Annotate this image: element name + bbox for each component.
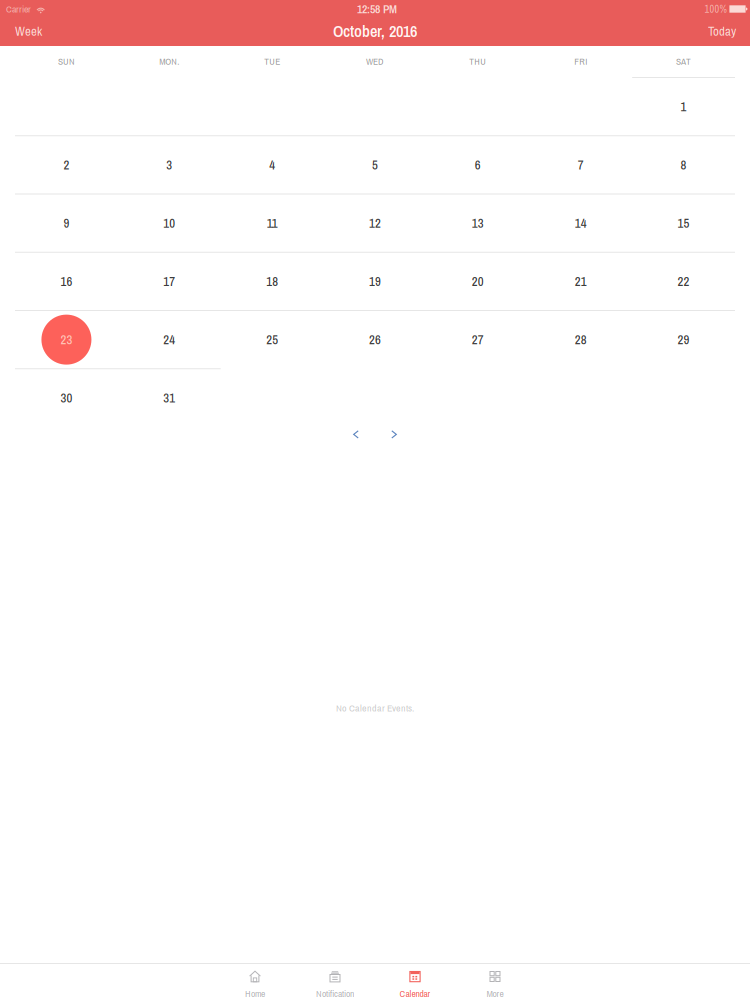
- staticText: 3: [166, 156, 172, 173]
- staticText: 13: [472, 214, 484, 232]
- staticText: 23: [60, 331, 72, 348]
- staticText: 26: [369, 331, 381, 348]
- staticText: Carrier: [6, 2, 31, 16]
- button[interactable]: Week: [15, 20, 42, 42]
- button[interactable]: 5: [324, 136, 426, 193]
- button[interactable]: 24: [118, 311, 221, 368]
- button[interactable]: 22: [632, 253, 735, 310]
- button[interactable]: Previous month: [341, 423, 371, 445]
- staticText: 27: [472, 331, 484, 348]
- staticText: SUN: [58, 55, 75, 68]
- button[interactable]: 11: [221, 194, 324, 252]
- button[interactable]: Calendar: [375, 963, 455, 1000]
- staticText: October, 2016: [333, 20, 417, 42]
- staticText: MON.: [159, 55, 179, 68]
- staticText: 31: [163, 389, 175, 406]
- staticText: 5: [372, 156, 378, 173]
- staticText: 30: [60, 389, 72, 406]
- staticText: Calendar: [399, 987, 430, 1000]
- button[interactable]: 31: [118, 369, 221, 426]
- button[interactable]: 12: [324, 194, 426, 252]
- button[interactable]: 29: [632, 311, 735, 368]
- staticText: 15: [678, 214, 690, 232]
- staticText: 28: [575, 331, 587, 348]
- staticText: 1: [681, 98, 687, 115]
- staticText: 4: [269, 156, 275, 173]
- staticText: 10: [163, 214, 175, 232]
- button[interactable]: Next month: [379, 423, 409, 445]
- button[interactable]: 2: [15, 136, 118, 193]
- button[interactable]: Notification: [295, 963, 375, 1000]
- button[interactable]: 28: [529, 311, 632, 368]
- staticText: 100%: [704, 2, 726, 16]
- staticText: Home: [245, 987, 265, 1000]
- button[interactable]: 15: [632, 194, 735, 252]
- staticText: 6: [475, 156, 481, 173]
- button[interactable]: 18: [221, 253, 324, 310]
- staticText: 19: [369, 273, 381, 290]
- staticText: 24: [163, 331, 175, 348]
- staticText: 29: [678, 331, 690, 348]
- staticText: 20: [472, 273, 484, 290]
- staticText: 18: [266, 273, 278, 290]
- staticText: WED: [366, 55, 384, 68]
- staticText: 12: [369, 214, 381, 232]
- staticText: 12:58 PM: [357, 1, 397, 17]
- button[interactable]: 25: [221, 311, 324, 368]
- staticText: SAT: [676, 55, 691, 68]
- button[interactable]: 27: [426, 311, 529, 368]
- staticText: 17: [163, 273, 175, 290]
- staticText: More: [486, 987, 503, 1000]
- staticText: THU: [469, 55, 486, 68]
- staticText: 22: [678, 273, 690, 290]
- staticText: 8: [681, 156, 687, 173]
- staticText: 2: [63, 156, 69, 173]
- staticText: 9: [63, 214, 69, 232]
- button[interactable]: Today: [708, 20, 736, 42]
- button[interactable]: 26: [324, 311, 426, 368]
- staticText: Notification: [316, 987, 354, 1000]
- staticText: No Calendar Events.: [336, 701, 414, 715]
- staticText: 16: [60, 273, 72, 290]
- button[interactable]: 14: [529, 194, 632, 252]
- staticText: 11: [267, 214, 278, 232]
- staticText: 7: [578, 156, 584, 173]
- button[interactable]: 20: [426, 253, 529, 310]
- button[interactable]: Home: [215, 963, 295, 1000]
- staticText: Week: [15, 22, 42, 40]
- staticText: TUE: [264, 55, 280, 68]
- staticText: 21: [575, 273, 587, 290]
- button[interactable]: 21: [529, 253, 632, 310]
- button[interactable]: 13: [426, 194, 529, 252]
- button[interactable]: 16: [15, 253, 118, 310]
- button[interactable]: 8: [632, 136, 735, 193]
- button[interactable]: 7: [529, 136, 632, 193]
- staticText: FRI: [574, 55, 587, 68]
- button[interactable]: 4: [221, 136, 324, 193]
- button[interactable]: 23: [15, 311, 118, 368]
- staticText: Today: [708, 22, 736, 40]
- button[interactable]: 19: [324, 253, 426, 310]
- button[interactable]: 6: [426, 136, 529, 193]
- button[interactable]: 1: [632, 78, 735, 135]
- button[interactable]: 9: [15, 194, 118, 252]
- staticText: 14: [575, 214, 587, 232]
- button[interactable]: 30: [15, 369, 118, 426]
- button[interactable]: 17: [118, 253, 221, 310]
- button[interactable]: 10: [118, 194, 221, 252]
- staticText: 25: [266, 331, 278, 348]
- button[interactable]: More: [455, 963, 535, 1000]
- button[interactable]: 3: [118, 136, 221, 193]
